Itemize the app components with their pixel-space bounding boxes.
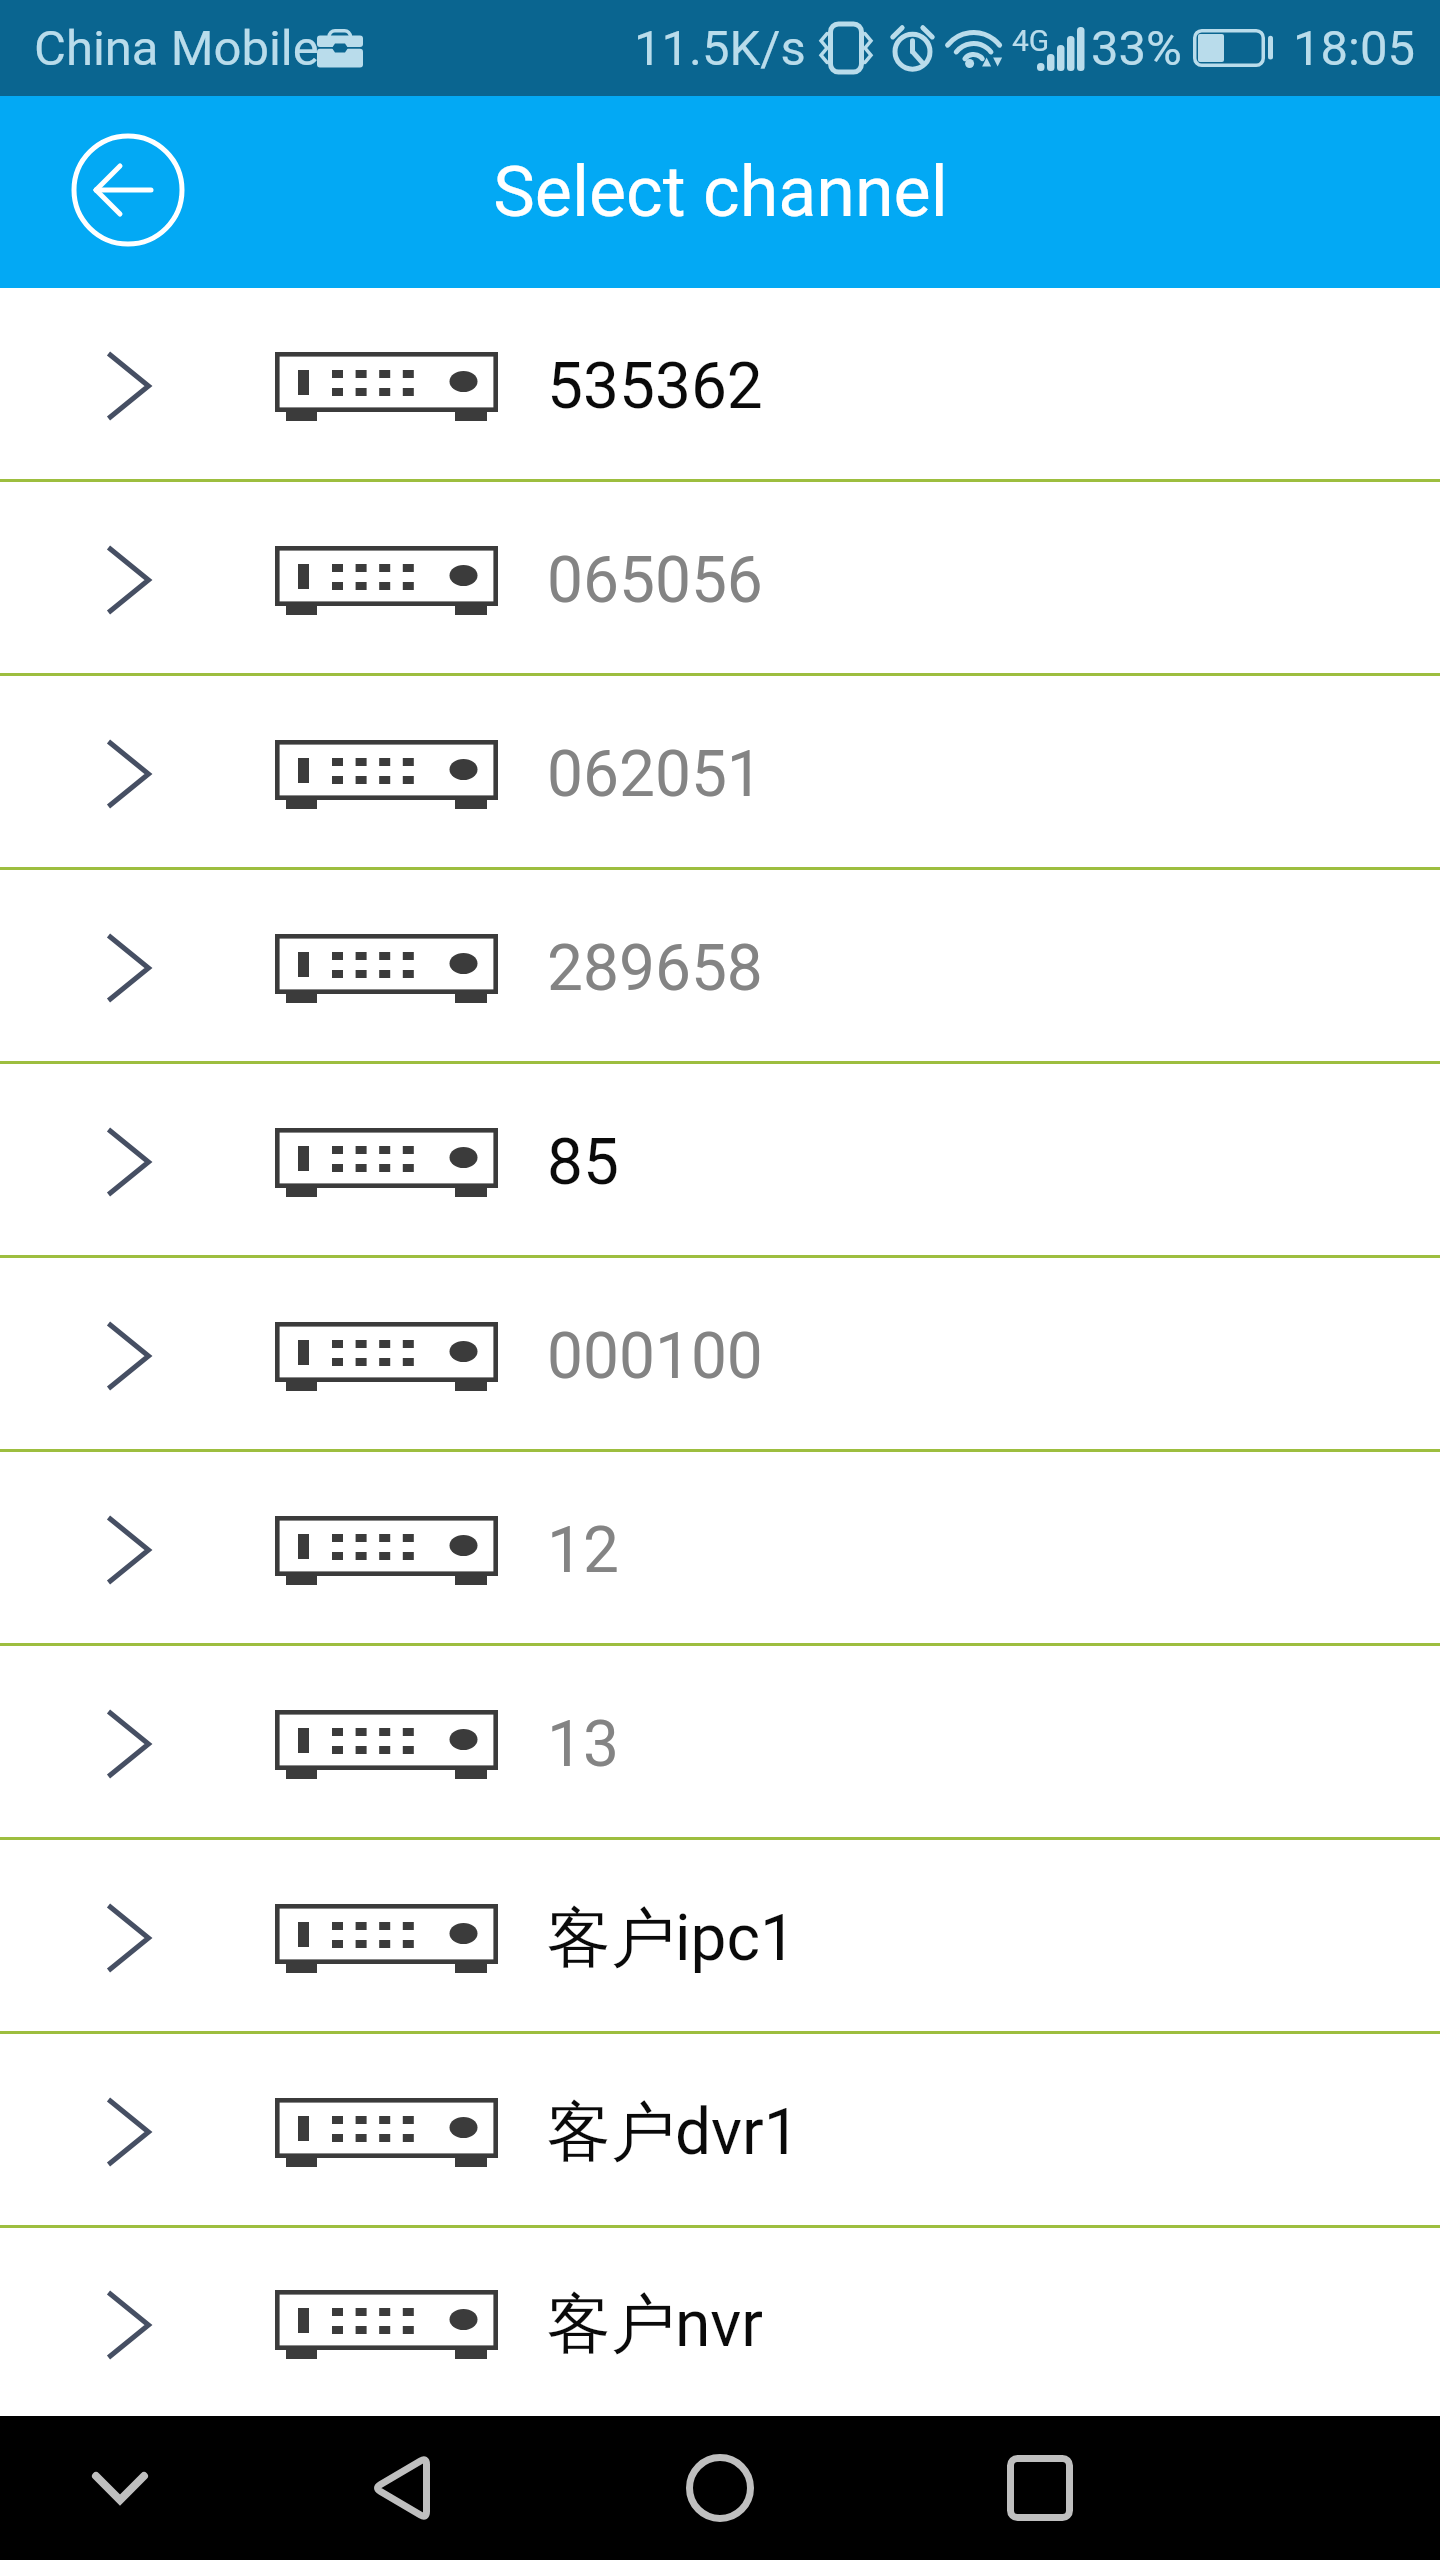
staticText: China Mobile	[34, 20, 319, 77]
staticText: 客户nvr	[547, 2284, 764, 2365]
staticText: 11.5K/s	[634, 20, 806, 77]
staticText: 4G	[1012, 23, 1050, 58]
button[interactable]: 客户ipc1	[0, 1840, 1440, 2031]
staticText: 000100	[547, 1319, 763, 1394]
staticText: Select channel	[493, 151, 948, 233]
staticText: 13	[547, 1707, 619, 1782]
button[interactable]: 535362	[0, 288, 1440, 479]
staticText: 535362	[547, 349, 763, 424]
button[interactable]: Home	[630, 2416, 810, 2560]
button[interactable]: 客户nvr	[0, 2228, 1440, 2416]
button[interactable]: 85	[0, 1064, 1440, 1255]
staticText: 062051	[547, 737, 763, 812]
staticText: 065056	[547, 543, 763, 618]
staticText: 289658	[547, 931, 763, 1006]
staticText: 客户dvr1	[547, 2092, 800, 2173]
button[interactable]: Back	[310, 2416, 490, 2560]
staticText: 18:05	[1293, 20, 1416, 77]
button[interactable]: 000100	[0, 1258, 1440, 1449]
button[interactable]: 289658	[0, 870, 1440, 1061]
staticText: 客户ipc1	[547, 1898, 796, 1979]
button[interactable]: 13	[0, 1646, 1440, 1837]
button[interactable]: Back	[54, 116, 202, 264]
button[interactable]: 12	[0, 1452, 1440, 1643]
staticText: 85	[547, 1125, 619, 1200]
button[interactable]: 客户dvr1	[0, 2034, 1440, 2225]
button[interactable]: Hide keyboard	[30, 2416, 210, 2560]
staticText: 33%	[1091, 20, 1182, 77]
button[interactable]: Recent apps	[950, 2416, 1130, 2560]
button[interactable]: 065056	[0, 482, 1440, 673]
staticText: 12	[547, 1513, 619, 1588]
button[interactable]: 062051	[0, 676, 1440, 867]
